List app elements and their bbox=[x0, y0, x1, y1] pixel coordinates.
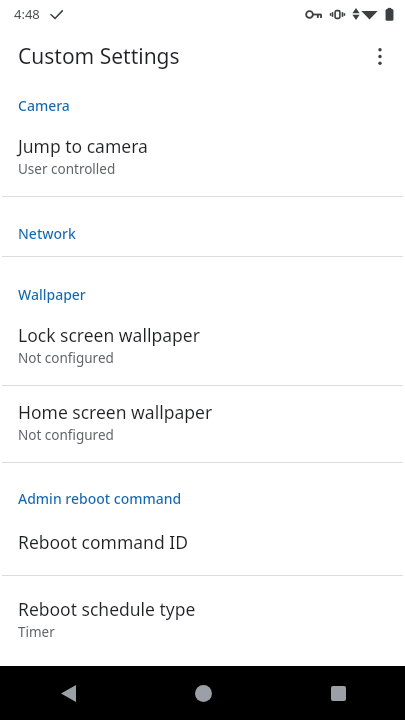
staticText: Custom Settings bbox=[18, 42, 180, 71]
staticText: 4:48 bbox=[14, 5, 40, 23]
button[interactable]: Jump to camera bbox=[0, 115, 405, 178]
staticText: Timer bbox=[18, 623, 55, 641]
staticText: Home screen wallpaper bbox=[18, 400, 213, 424]
button[interactable]: Home screen wallpaper bbox=[0, 386, 405, 444]
button[interactable]: More options bbox=[362, 38, 398, 74]
staticText: User controlled bbox=[18, 160, 116, 178]
staticText: Reboot command ID bbox=[18, 530, 188, 554]
button[interactable]: Reboot command ID bbox=[0, 508, 405, 554]
button[interactable]: Lock screen wallpaper bbox=[0, 304, 405, 367]
staticText: Jump to camera bbox=[18, 134, 148, 158]
staticText: Admin reboot command bbox=[18, 489, 182, 508]
staticText: Lock screen wallpaper bbox=[18, 323, 200, 347]
button[interactable]: Home bbox=[179, 669, 227, 717]
staticText: Camera bbox=[18, 96, 70, 115]
button[interactable]: Back bbox=[44, 669, 92, 717]
staticText: Network bbox=[18, 224, 76, 243]
button[interactable]: Reboot schedule type bbox=[0, 576, 405, 641]
staticText: Not configured bbox=[18, 349, 114, 367]
staticText: Not configured bbox=[18, 426, 114, 444]
button[interactable]: Recent apps bbox=[314, 669, 362, 717]
staticText: Reboot schedule type bbox=[18, 597, 196, 621]
staticText: Wallpaper bbox=[18, 285, 86, 304]
